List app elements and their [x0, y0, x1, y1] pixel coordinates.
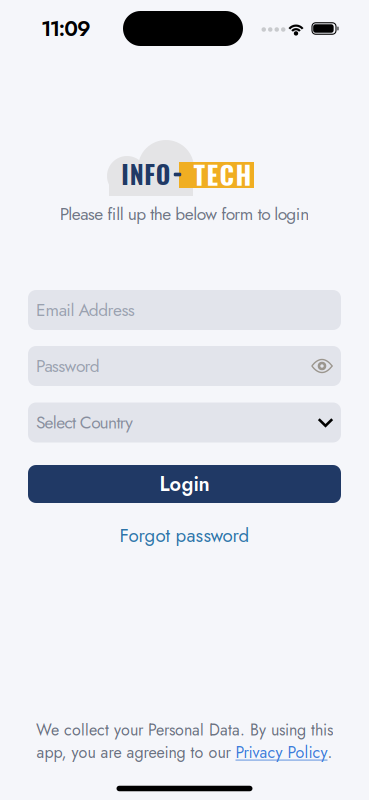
staticText: Select Country: [36, 410, 133, 435]
staticText: Privacy Policy: [235, 741, 327, 764]
button[interactable]: Login: [28, 465, 341, 503]
staticText: We collect your Personal Data. By using …: [36, 719, 333, 741]
button[interactable]: Select Country: [28, 402, 341, 442]
staticText: Forgot password: [119, 522, 249, 549]
staticText: Login: [159, 470, 209, 498]
staticText: Email Address: [36, 298, 135, 322]
staticText: app, you are agreeing to our: [36, 741, 235, 764]
staticText: Password: [36, 354, 100, 378]
button[interactable]: Forgot password: [119, 522, 249, 549]
staticText: TECH: [193, 155, 251, 193]
button[interactable]: Password: [28, 346, 341, 386]
button[interactable]: Privacy Policy: [235, 741, 327, 764]
button[interactable]: Email Address: [28, 290, 341, 330]
staticText: INFO: [121, 155, 171, 192]
staticText: Please fill up the below form to login: [60, 202, 309, 226]
staticText: .: [327, 741, 332, 764]
staticText: 11:09: [41, 13, 91, 44]
